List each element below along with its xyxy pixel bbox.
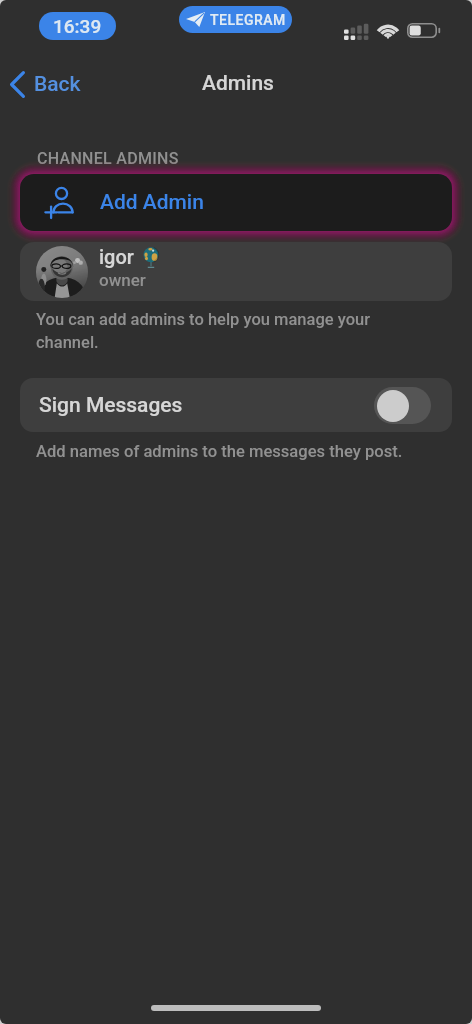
staticText: Add Admin bbox=[100, 190, 204, 215]
button[interactable]: Sign Messages toggle, off bbox=[374, 387, 431, 424]
button[interactable]: Sign Messages bbox=[20, 378, 452, 432]
staticText: Admins bbox=[202, 71, 274, 96]
staticText: owner bbox=[99, 270, 146, 290]
staticText: TELEGRAM bbox=[210, 12, 286, 28]
button[interactable]: igor bbox=[20, 242, 452, 301]
button[interactable]: Back bbox=[4, 62, 91, 106]
staticText: igor bbox=[99, 245, 134, 268]
staticText: Sign Messages bbox=[39, 393, 183, 418]
button[interactable]: Add Admin bbox=[20, 174, 452, 231]
staticText: CHANNEL ADMINS bbox=[37, 149, 179, 168]
staticText: 16:39 bbox=[53, 15, 102, 37]
staticText: You can add admins to help you manage yo… bbox=[36, 310, 381, 352]
staticText: Add names of admins to the messages they… bbox=[36, 442, 403, 461]
staticText: Back bbox=[34, 72, 81, 97]
